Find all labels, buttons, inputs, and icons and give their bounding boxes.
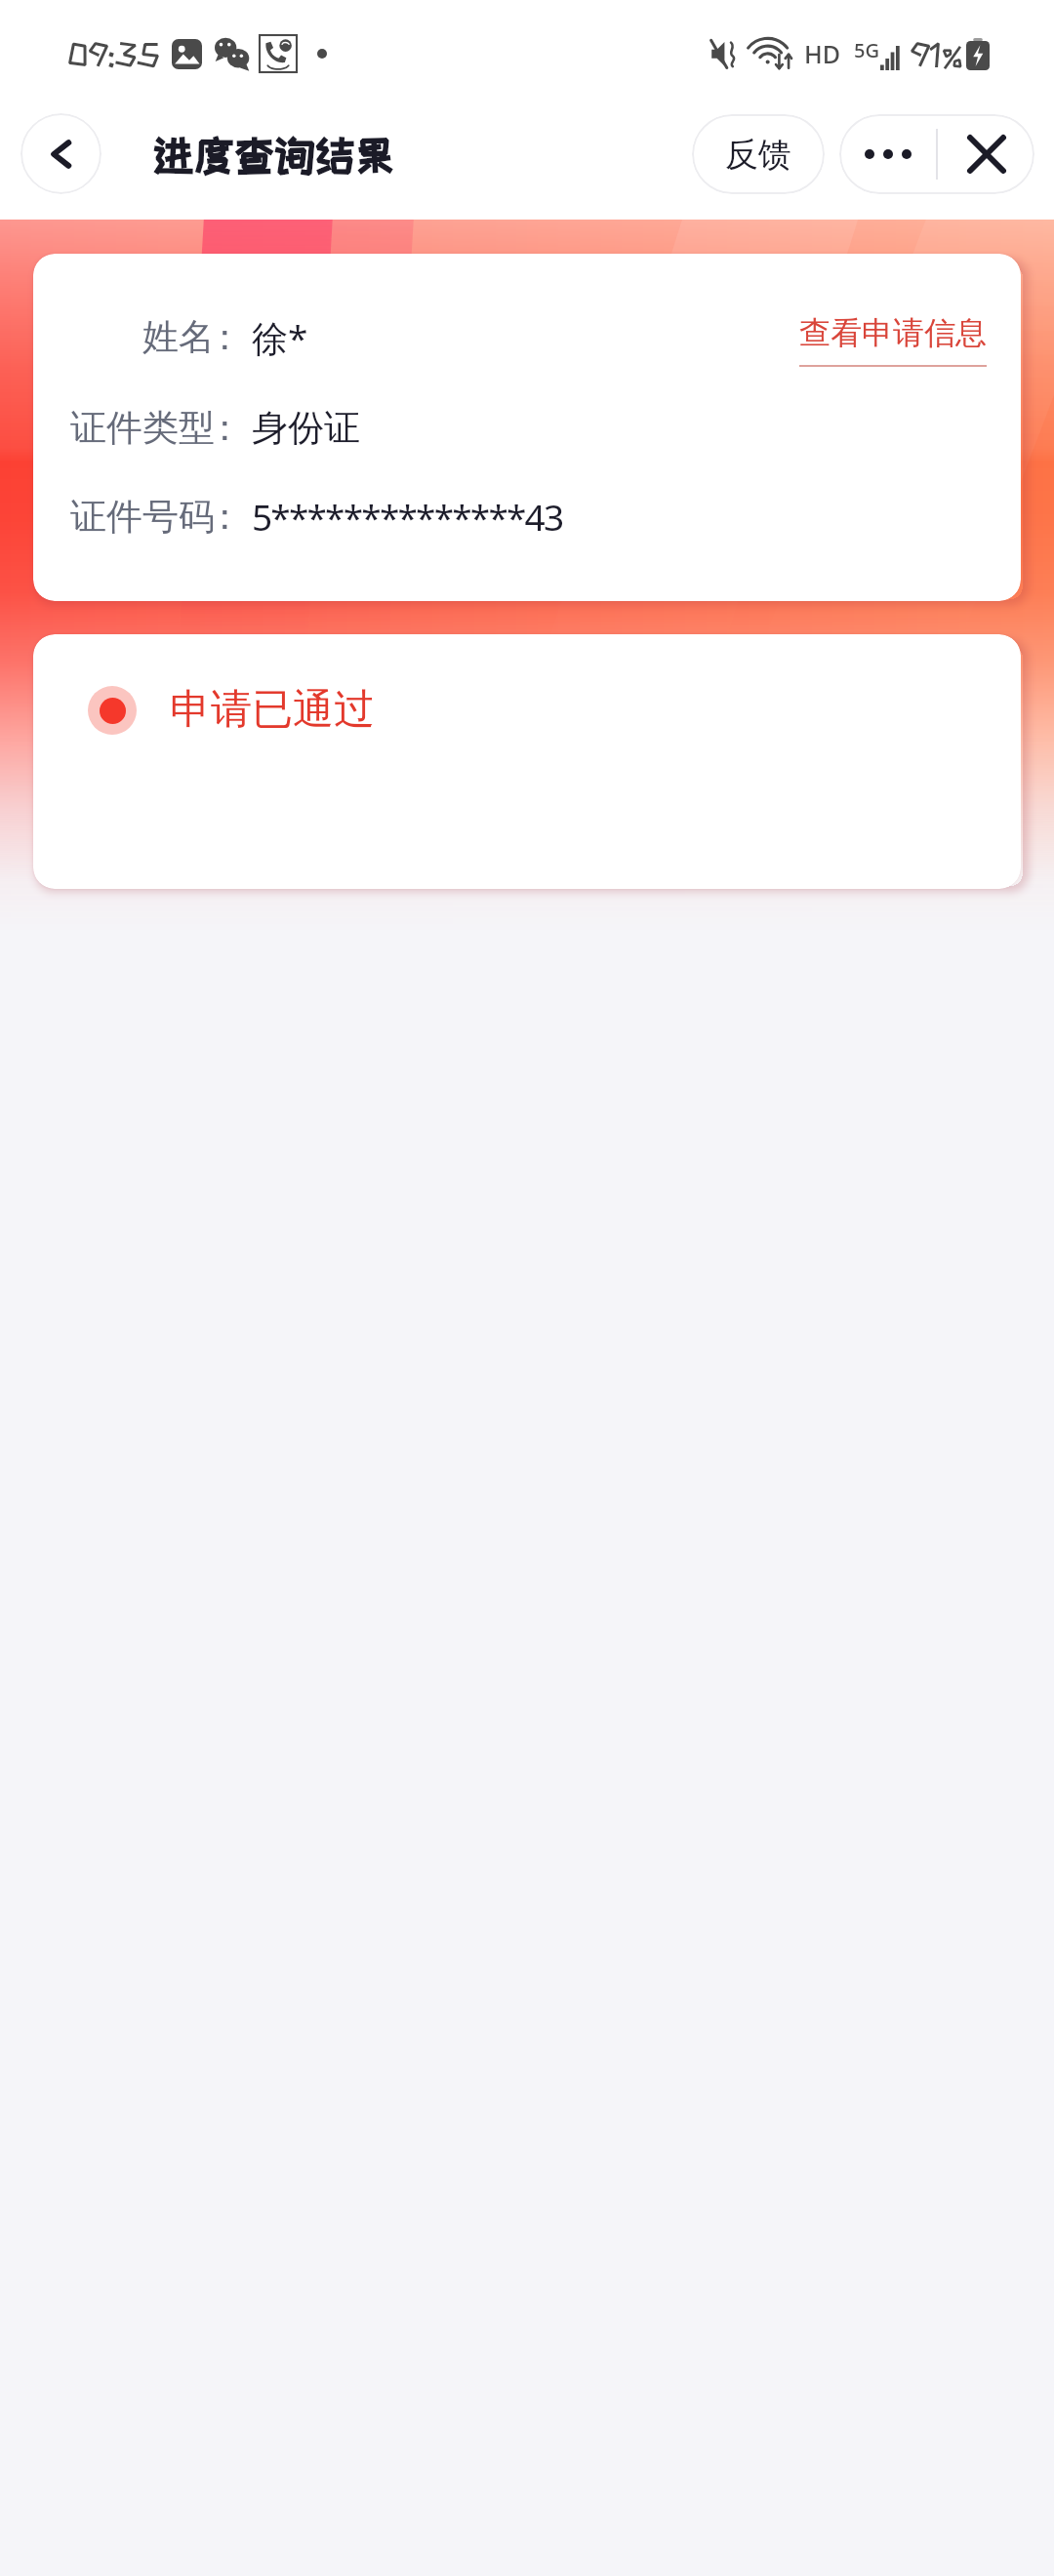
staticText: 证件号码 (70, 494, 215, 540)
staticText: 徐* (252, 312, 308, 362)
staticText: ： (207, 314, 243, 360)
staticText: 5**************43 (252, 492, 563, 541)
staticText: ： (207, 405, 243, 451)
staticText: 5G (854, 37, 879, 63)
staticText: 进度查询结果 (153, 133, 396, 177)
staticText: ： (207, 494, 243, 540)
staticText: 证件类型 (70, 405, 215, 451)
staticText: 姓名 (142, 314, 215, 360)
button[interactable]: 反馈 (692, 114, 825, 194)
staticText: 91% (911, 37, 963, 70)
button[interactable]: Back (20, 113, 101, 194)
staticText: 09:35 (66, 37, 160, 70)
button[interactable]: 申请已通过 (88, 684, 375, 736)
staticText: 反馈 (725, 134, 791, 176)
staticText: 查看申请信息 (799, 313, 987, 352)
button[interactable]: Close (938, 114, 1034, 194)
staticText: 申请已通过 (170, 684, 375, 736)
button[interactable]: 查看申请信息 (799, 313, 987, 367)
button[interactable]: More options (839, 114, 936, 194)
staticText: 身份证 (252, 405, 360, 451)
staticText: HD (804, 37, 840, 70)
